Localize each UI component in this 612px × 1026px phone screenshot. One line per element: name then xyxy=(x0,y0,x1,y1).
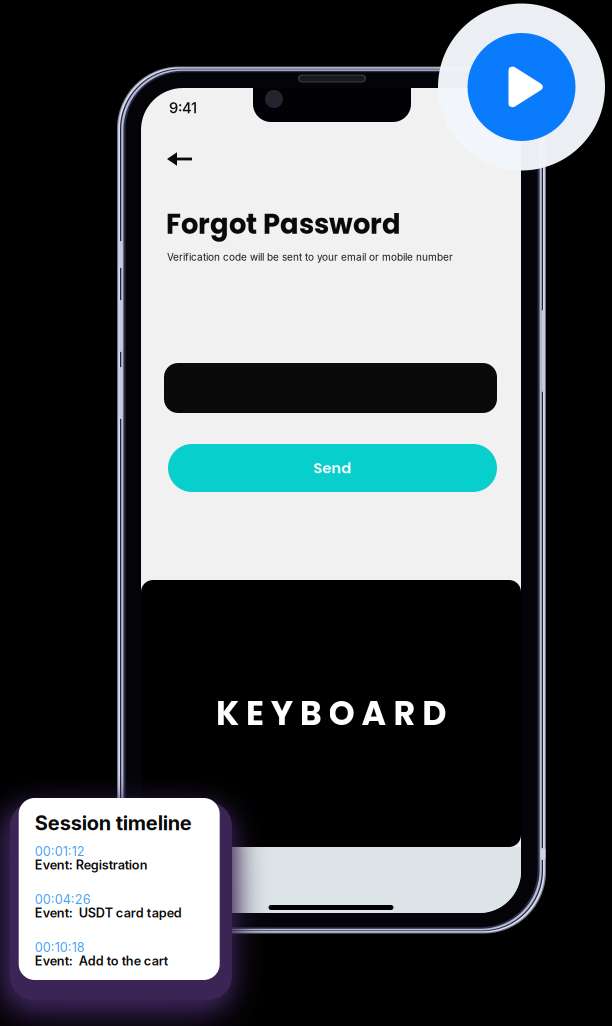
staticText: 00:10:18 xyxy=(35,940,85,955)
staticText: Event: USDT card taped xyxy=(35,905,182,921)
staticText: D xyxy=(422,690,446,737)
staticText: B xyxy=(300,690,322,737)
staticText: Verification code will be sent to your e… xyxy=(167,251,453,263)
staticText: 9:41 xyxy=(169,99,197,117)
staticText: K xyxy=(216,690,239,737)
staticText: R xyxy=(393,690,415,737)
button[interactable]: Back xyxy=(167,141,211,177)
staticText: Send xyxy=(313,458,351,478)
staticText: Y xyxy=(271,690,293,737)
staticText: Forgot Password xyxy=(166,205,401,243)
button[interactable]: Send xyxy=(168,444,497,492)
staticText: Event: Registration xyxy=(35,857,148,873)
staticText: E xyxy=(246,690,264,737)
staticText: 00:04:26 xyxy=(35,892,91,907)
staticText: Event: Add to the cart xyxy=(35,953,168,969)
staticText: Session timeline xyxy=(35,811,192,835)
staticText: 00:01:12 xyxy=(35,844,85,859)
staticText: A xyxy=(361,690,386,737)
button[interactable]: Play video xyxy=(467,33,575,141)
staticText: O xyxy=(329,690,355,737)
